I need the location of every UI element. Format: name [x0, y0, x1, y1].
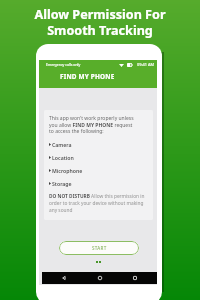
button[interactable]: Home — [96, 274, 104, 282]
other: Battery — [127, 63, 133, 67]
button[interactable]: Location — [49, 154, 74, 161]
button[interactable]: Back — [60, 274, 68, 282]
staticText: START — [92, 245, 107, 251]
button[interactable]: Camera — [49, 141, 72, 148]
staticText: Microphone — [52, 167, 83, 174]
button[interactable]: Storage — [49, 180, 72, 187]
button[interactable]: START — [59, 241, 139, 255]
staticText: 09:41 AM — [137, 62, 154, 67]
other: Wi-Fi — [119, 63, 124, 67]
staticText: FIND MY PHONE — [60, 72, 115, 81]
button[interactable]: Microphone — [49, 167, 83, 174]
staticText: Location — [52, 154, 74, 161]
staticText: Camera — [52, 141, 72, 148]
button[interactable]: Recent apps — [131, 274, 139, 282]
staticText: Emergency calls only — [46, 62, 81, 67]
staticText: This app won't work properly unless you … — [49, 115, 134, 134]
staticText: DO NOT DISTURB Allow this permission in … — [49, 193, 145, 214]
staticText: Storage — [52, 180, 72, 187]
staticText: Allow Permission For Smooth Tracking — [0, 6, 200, 39]
